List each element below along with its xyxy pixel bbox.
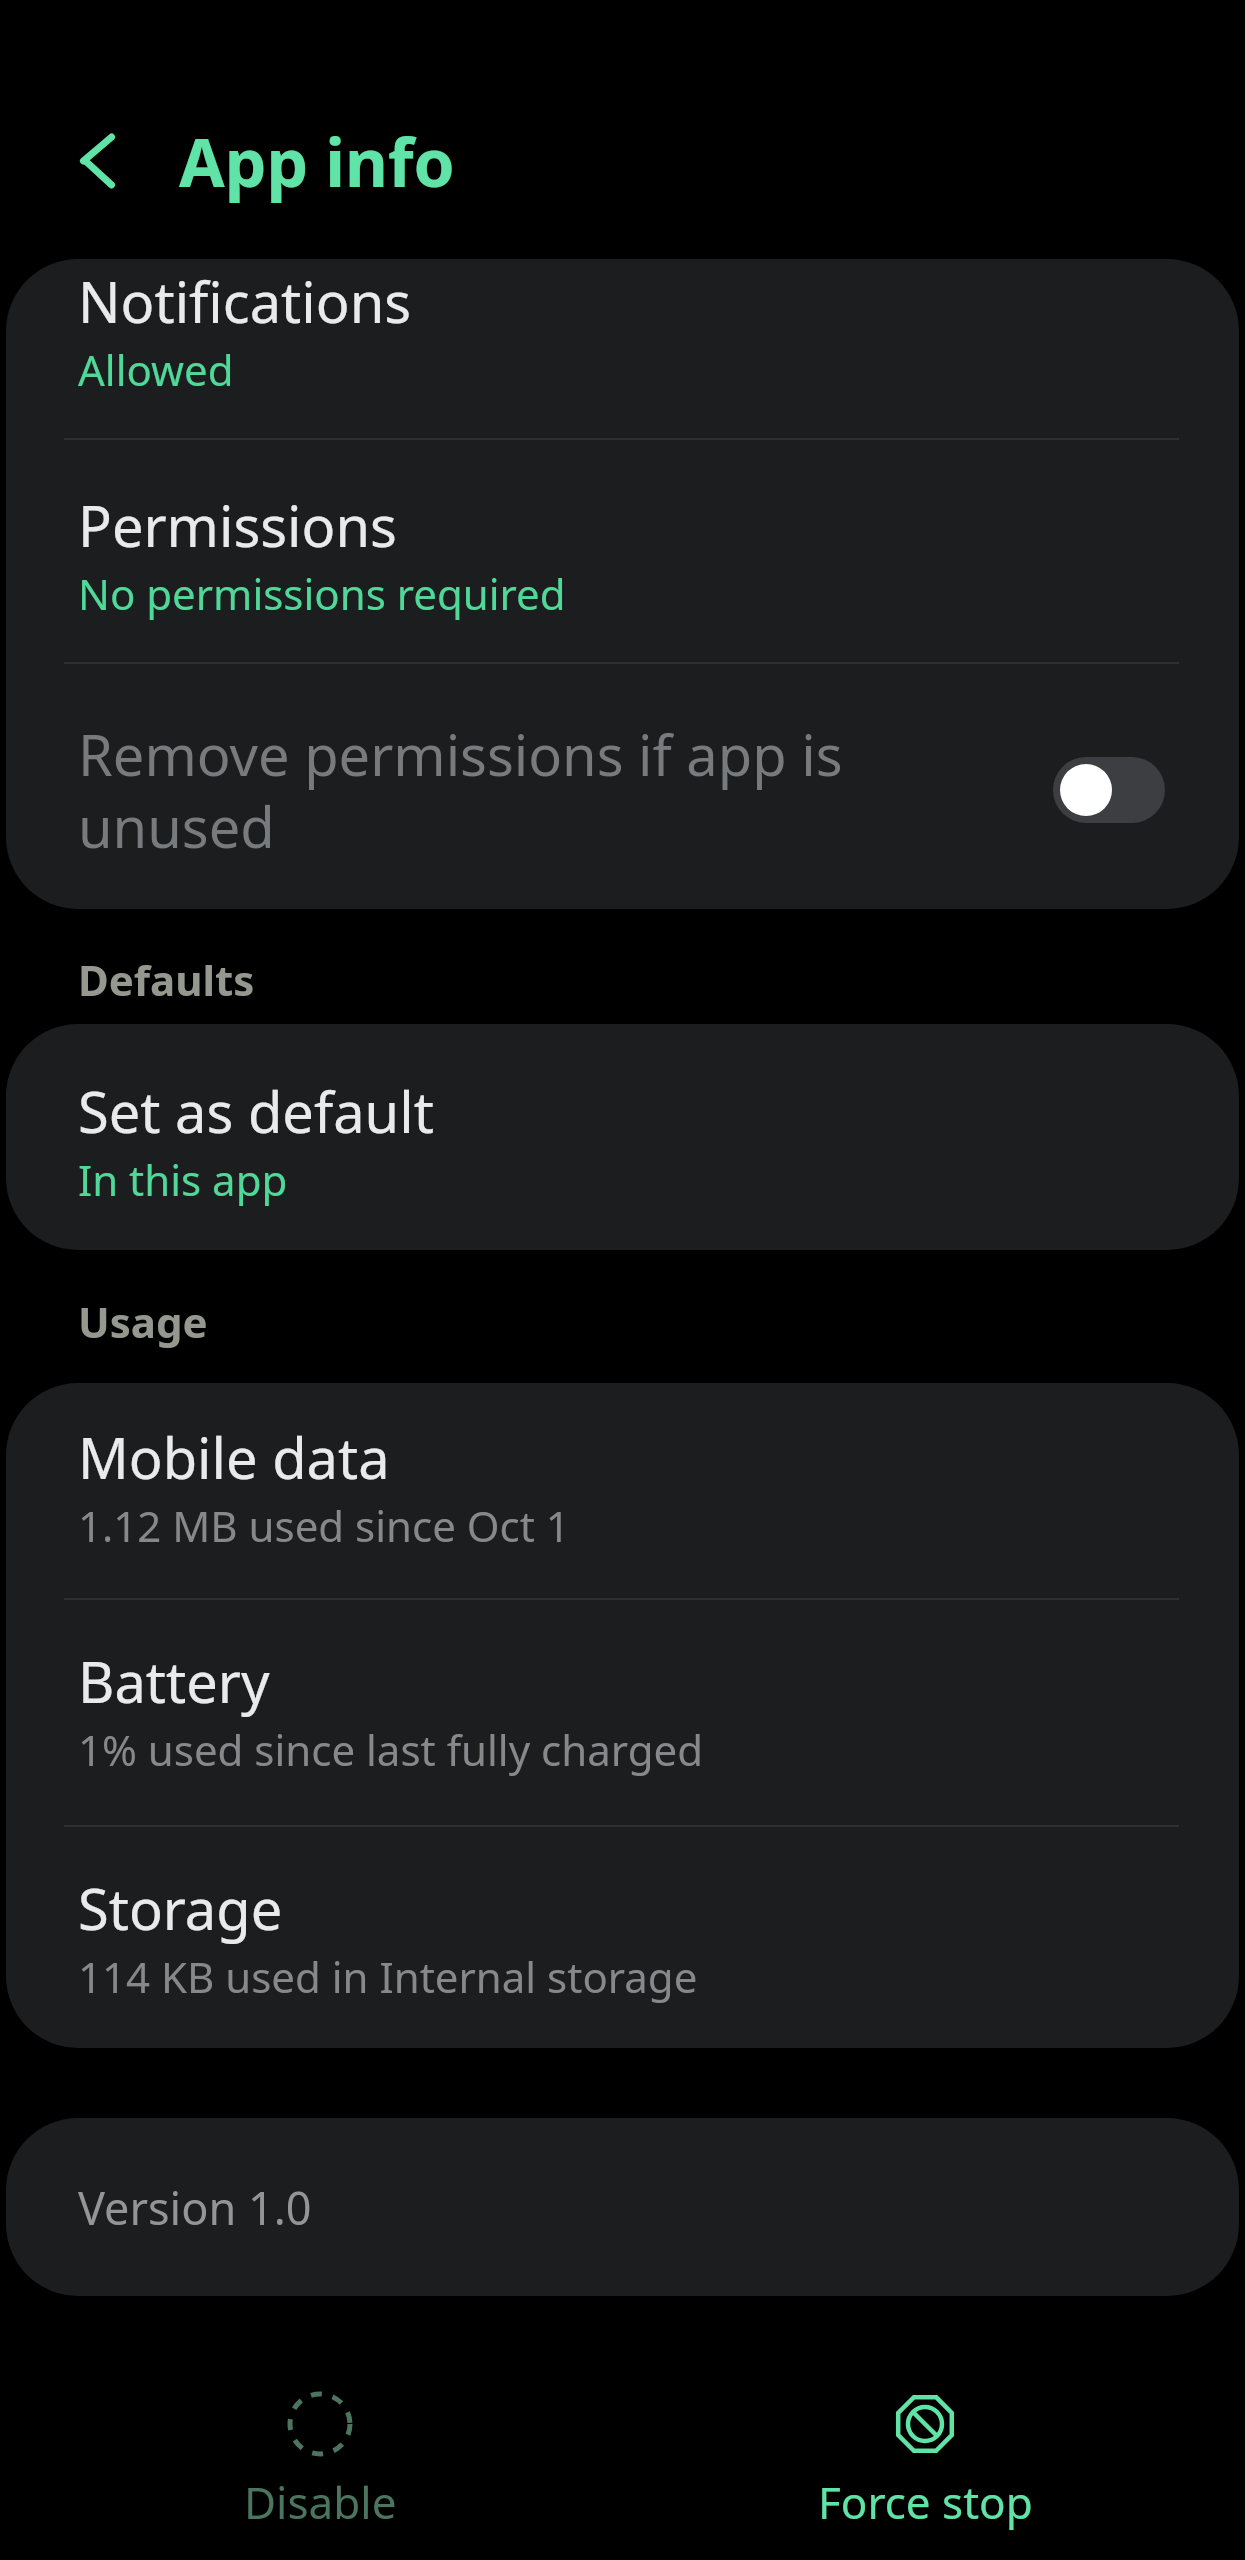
button[interactable]: Notifications (6, 259, 1239, 438)
button[interactable]: Permissions (6, 440, 1239, 662)
button[interactable]: Mobile data (6, 1383, 1239, 1598)
staticText: 1% used since last fully charged (78, 1721, 704, 1778)
staticText: Allowed (78, 341, 234, 398)
staticText: 1.12 MB used since Oct 1 (78, 1497, 570, 1554)
staticText: Version 1.0 (78, 2177, 312, 2238)
staticText: Remove permissions if app is unused (78, 716, 1053, 864)
button[interactable]: Remove permissions if app is unused (6, 664, 1239, 909)
staticText: Force stop (818, 2472, 1033, 2532)
button[interactable]: Force stop (640, 2391, 1210, 2532)
staticText: Mobile data (78, 1419, 390, 1495)
staticText: 114 KB used in Internal storage (78, 1948, 698, 2005)
staticText: Defaults (78, 951, 255, 1008)
staticText: Usage (78, 1293, 208, 1350)
staticText: Disable (244, 2472, 397, 2532)
staticText: App info (179, 116, 455, 206)
staticText: No permissions required (78, 565, 566, 622)
staticText: Permissions (78, 487, 397, 563)
staticText: In this app (78, 1151, 288, 1208)
staticText: Battery (78, 1643, 270, 1719)
staticText: Notifications (78, 263, 412, 339)
button[interactable]: Set as default (6, 1024, 1239, 1250)
button[interactable]: Storage (6, 1827, 1239, 2048)
staticText: Set as default (78, 1073, 434, 1149)
button[interactable] (72, 135, 124, 187)
button[interactable]: Disable (0, 2391, 640, 2532)
staticText: Storage (78, 1870, 283, 1946)
button[interactable]: Battery (6, 1600, 1239, 1825)
button[interactable] (1053, 757, 1165, 823)
button[interactable]: Version 1.0 (6, 2118, 1239, 2296)
